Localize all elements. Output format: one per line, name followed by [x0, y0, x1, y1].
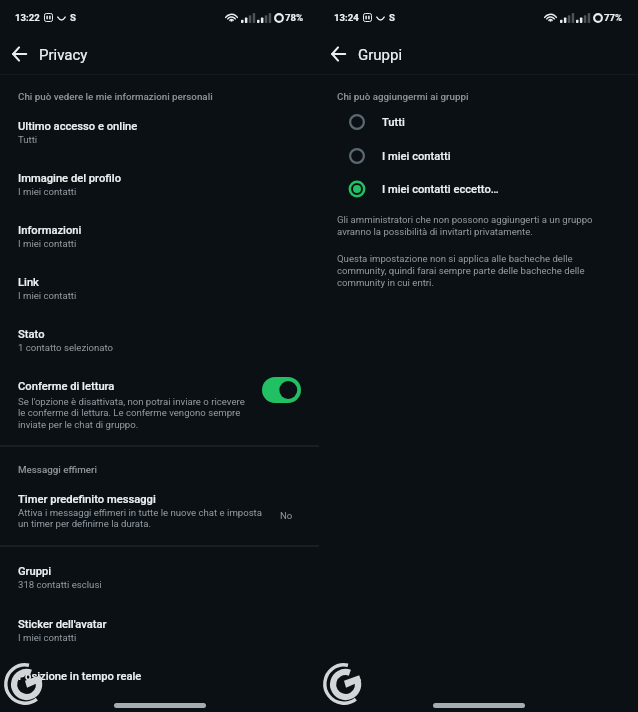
staticText: No	[280, 510, 293, 521]
button[interactable]: Link	[0, 272, 319, 304]
staticText: Gli amministratori che non possono aggiu…	[337, 214, 605, 237]
staticText: Tutti	[382, 116, 405, 129]
button[interactable]: Posizione in tempo reale	[0, 666, 319, 687]
staticText: Attiva i messaggi effimeri in tutte le n…	[18, 507, 271, 529]
button[interactable]: Stato	[0, 324, 319, 356]
staticText: Questa impostazione non si applica alle …	[337, 253, 605, 288]
staticText: I miei contatti eccetto…	[382, 183, 499, 196]
staticText: Ultimo accesso e online	[18, 120, 138, 133]
staticText: 1 contatto selezionato	[18, 342, 114, 353]
staticText: S	[70, 12, 76, 23]
staticText: Tutti	[18, 134, 38, 145]
staticText: 78%	[285, 12, 304, 23]
button[interactable]: Back	[322, 38, 354, 70]
staticText: S	[389, 12, 395, 23]
staticText: 13:24	[334, 12, 359, 23]
staticText: Link	[18, 276, 39, 289]
staticText: I miei contatti	[382, 150, 451, 163]
button[interactable]: Informazioni	[0, 220, 319, 252]
button[interactable]: Immagine del profilo	[0, 168, 319, 200]
button[interactable]: Ultimo accesso e online	[0, 116, 319, 148]
staticText: Conferme di lettura	[18, 380, 115, 393]
staticText: 318 contatti esclusi	[18, 579, 102, 590]
staticText: Messaggi effimeri	[18, 464, 97, 475]
button[interactable]: Sticker dell'avatar	[0, 614, 319, 646]
staticText: Posizione in tempo reale	[18, 670, 142, 683]
button[interactable]: I miei contatti eccetto…	[319, 173, 638, 205]
staticText: Gruppi	[358, 46, 403, 64]
staticText: 77%	[604, 12, 623, 23]
button[interactable]: Conferme di lettura	[0, 374, 319, 433]
button[interactable]: I miei contatti	[319, 140, 638, 172]
staticText: 13:22	[15, 12, 40, 23]
staticText: I miei contatti	[18, 238, 77, 249]
staticText: I miei contatti	[18, 632, 77, 643]
staticText: Gruppi	[18, 565, 52, 578]
button[interactable]: Tutti	[319, 106, 638, 138]
staticText: Timer predefinito messaggi	[18, 493, 156, 506]
button[interactable]: Timer predefinito messaggi	[0, 489, 319, 532]
staticText: Immagine del profilo	[18, 172, 121, 185]
staticText: Stato	[18, 328, 45, 341]
button[interactable]: Back	[3, 38, 35, 70]
button[interactable]: Gruppi	[0, 561, 319, 593]
staticText: I miei contatti	[18, 290, 77, 301]
staticText: Chi può aggiungermi ai gruppi	[337, 91, 469, 102]
staticText: I miei contatti	[18, 186, 77, 197]
button[interactable]: Conferme di lettura	[262, 377, 301, 403]
staticText: Se l'opzione è disattivata, non potrai i…	[18, 396, 251, 430]
staticText: Chi può vedere le mie informazioni perso…	[18, 91, 213, 102]
staticText: Sticker dell'avatar	[18, 618, 107, 631]
staticText: Privacy	[39, 46, 88, 64]
staticText: Informazioni	[18, 224, 82, 237]
